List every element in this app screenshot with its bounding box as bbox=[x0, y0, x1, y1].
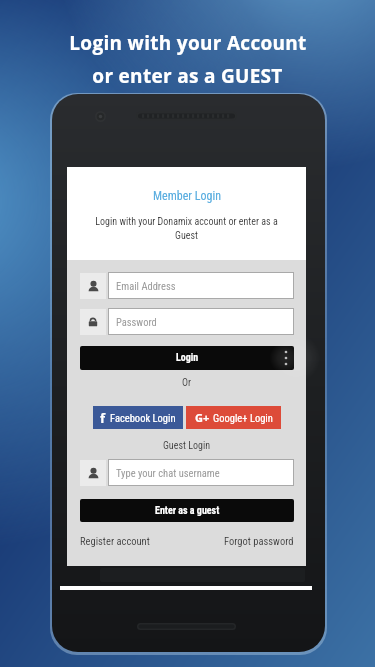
staticText: Enter as a guest bbox=[155, 505, 220, 517]
button[interactable]: f bbox=[93, 406, 183, 429]
button[interactable]: Login bbox=[80, 346, 294, 370]
staticText: G+ bbox=[195, 410, 210, 425]
staticText: Login bbox=[176, 352, 199, 364]
staticText: Member Login bbox=[153, 189, 221, 203]
staticText: Password bbox=[116, 316, 157, 328]
button[interactable]: G+ bbox=[186, 406, 281, 429]
staticText: or enter as a GUEST bbox=[92, 63, 283, 89]
button[interactable]: Email Address bbox=[108, 272, 294, 299]
staticText: Or bbox=[67, 377, 306, 389]
button[interactable]: Register account bbox=[80, 535, 150, 547]
button[interactable]: Forgot password bbox=[224, 535, 294, 547]
staticText: Login with your Donamix account or enter… bbox=[83, 216, 290, 242]
staticText: f bbox=[100, 409, 106, 427]
staticText: Google+ Login bbox=[213, 412, 273, 424]
button[interactable]: Type your chat username bbox=[108, 459, 294, 486]
button[interactable]: More options bbox=[277, 346, 294, 370]
button[interactable]: Enter as a guest bbox=[80, 499, 294, 522]
staticText: Email Address bbox=[116, 280, 176, 292]
button[interactable]: Password bbox=[108, 308, 294, 335]
staticText: Facebook Login bbox=[110, 412, 176, 424]
staticText: Type your chat username bbox=[116, 467, 220, 479]
staticText: Guest Login bbox=[67, 440, 306, 452]
staticText: Login with your Account bbox=[69, 30, 307, 56]
